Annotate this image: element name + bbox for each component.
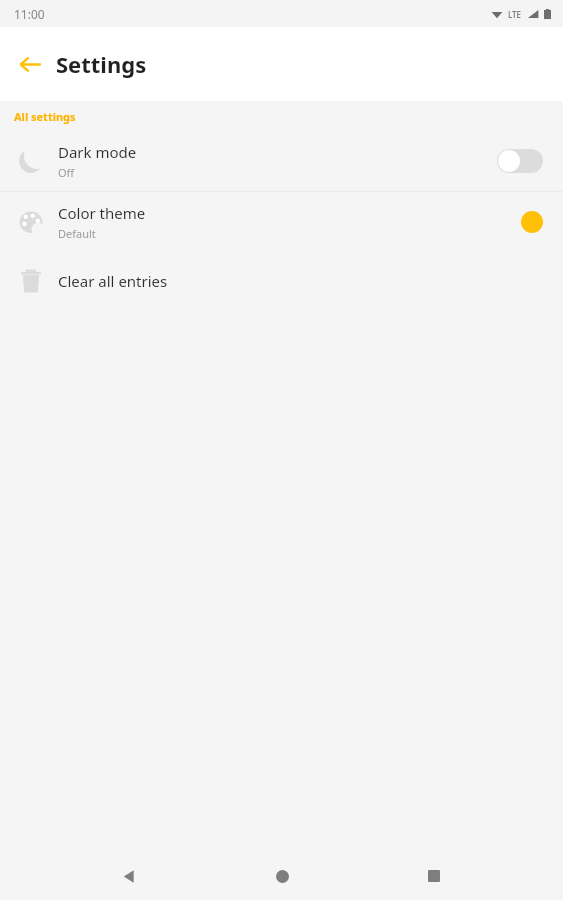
button[interactable]: Back xyxy=(105,852,153,900)
button[interactable]: Home xyxy=(258,852,306,900)
staticText: Settings xyxy=(56,49,147,79)
staticText: Default xyxy=(58,226,96,241)
button[interactable]: Dark mode toggle xyxy=(497,148,543,174)
staticText: Clear all entries xyxy=(58,271,168,291)
button[interactable]: Clear all entries xyxy=(0,252,563,310)
button[interactable]: Recents xyxy=(410,852,458,900)
staticText: Color theme xyxy=(58,203,146,223)
staticText: 11:00 xyxy=(14,6,45,22)
staticText: Off xyxy=(58,165,75,180)
staticText: Dark mode xyxy=(58,142,137,162)
staticText: LTE xyxy=(508,9,522,20)
button[interactable]: Back xyxy=(10,44,50,84)
button[interactable]: Dark mode xyxy=(0,131,563,191)
staticText: All settings xyxy=(14,109,76,124)
button[interactable]: Color theme xyxy=(0,192,563,252)
